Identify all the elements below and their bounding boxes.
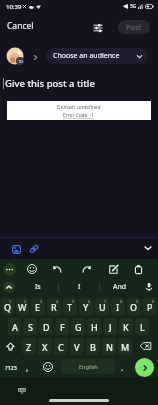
staticText: B	[90, 341, 96, 353]
button[interactable]: Is	[18, 278, 58, 296]
button[interactable]: Profile	[6, 47, 24, 65]
staticText: O	[130, 301, 138, 313]
button[interactable]: Voice input	[140, 278, 158, 296]
button[interactable]: Comma	[20, 357, 35, 377]
staticText: 8	[120, 299, 123, 304]
button[interactable]: Post	[118, 20, 150, 34]
staticText: Z	[26, 341, 32, 353]
staticText: W	[18, 301, 27, 313]
button[interactable]: Undo	[48, 260, 65, 277]
staticText: Y	[83, 301, 89, 313]
staticText: S	[28, 321, 33, 333]
button[interactable]: Z	[22, 338, 36, 355]
button[interactable]: T	[63, 298, 77, 315]
staticText: J	[109, 321, 112, 333]
button[interactable]: N	[102, 338, 116, 355]
staticText: 1	[9, 299, 12, 304]
staticText: I	[78, 282, 81, 292]
staticText: A	[12, 321, 18, 333]
staticText: U	[99, 301, 106, 313]
staticText: Domain: undefined	[57, 104, 101, 111]
button[interactable]: V	[70, 338, 84, 355]
button[interactable]: Cancel	[3, 17, 38, 35]
button[interactable]: ?123	[2, 357, 20, 377]
button[interactable]: Clipboard	[130, 261, 146, 277]
staticText: X	[42, 341, 48, 353]
button[interactable]: S	[23, 318, 37, 335]
button[interactable]: Post options	[89, 19, 106, 36]
button[interactable]: Hide keyboard	[16, 385, 28, 397]
staticText: And	[113, 282, 127, 292]
button[interactable]: M	[118, 338, 132, 355]
button[interactable]: C	[54, 338, 68, 355]
button[interactable]: O	[127, 298, 141, 315]
button[interactable]: W	[16, 298, 29, 315]
staticText: F	[60, 321, 65, 333]
staticText: G	[75, 321, 82, 333]
button[interactable]: Y	[79, 298, 93, 315]
button[interactable]: L	[135, 318, 149, 335]
button[interactable]: I	[111, 298, 125, 315]
staticText: ,	[26, 362, 29, 373]
button[interactable]: X	[38, 338, 52, 355]
button[interactable]: H	[87, 318, 101, 335]
button[interactable]: A	[8, 318, 21, 335]
button[interactable]: D	[39, 318, 53, 335]
button[interactable]: Expand suggestions	[0, 278, 18, 296]
button[interactable]: U	[95, 298, 109, 315]
button[interactable]: E	[31, 298, 45, 315]
button[interactable]: R	[47, 298, 61, 315]
button[interactable]: Add link	[26, 241, 42, 257]
staticText: 5	[72, 299, 75, 304]
button[interactable]: Give this post a title	[3, 77, 95, 90]
button[interactable]: Emoji	[40, 357, 56, 377]
button[interactable]: And	[100, 278, 140, 296]
button[interactable]: J	[103, 318, 117, 335]
button[interactable]: Choose an audience	[46, 48, 148, 64]
button[interactable]: Q	[1, 298, 14, 315]
staticText: V	[74, 341, 80, 353]
button[interactable]: Text editing	[105, 261, 121, 277]
staticText: D	[43, 321, 50, 333]
staticText: Error Code: -1	[63, 112, 95, 119]
button[interactable]: English	[61, 359, 115, 374]
button[interactable]: F	[55, 318, 69, 335]
button[interactable]: P	[143, 298, 157, 315]
staticText: 5G	[130, 3, 137, 10]
button[interactable]: G	[71, 318, 85, 335]
staticText: 10	[18, 59, 23, 64]
button[interactable]: Enter	[134, 357, 154, 377]
button[interactable]: Shift	[0, 336, 21, 356]
staticText: T	[67, 301, 73, 313]
button[interactable]: Period	[115, 357, 129, 377]
staticText: 3	[40, 299, 43, 304]
staticText: English	[79, 363, 98, 370]
staticText: 4	[56, 299, 59, 304]
button[interactable]: K	[119, 318, 133, 335]
staticText: Post	[126, 22, 142, 32]
button[interactable]: Redo	[78, 260, 95, 277]
button[interactable]: Backspace	[133, 336, 158, 356]
staticText: E	[35, 301, 41, 313]
staticText: 9	[136, 299, 139, 304]
staticText: N	[106, 341, 113, 353]
staticText: 7	[104, 299, 107, 304]
button[interactable]: More options	[1, 261, 17, 277]
staticText: H	[91, 321, 98, 333]
staticText: 2	[24, 299, 27, 304]
staticText: 0	[152, 299, 155, 304]
staticText: Is	[35, 282, 41, 292]
staticText: L	[140, 321, 145, 333]
button[interactable]: I	[59, 278, 99, 296]
staticText: .	[121, 362, 124, 373]
button[interactable]: B	[86, 338, 100, 355]
staticText: 10:39	[6, 3, 22, 11]
staticText: C	[58, 341, 64, 353]
button[interactable]: Stickers	[24, 261, 40, 277]
staticText: Choose an audience	[53, 51, 120, 61]
staticText: Cancel	[7, 20, 34, 32]
button[interactable]: Collapse toolbar	[140, 240, 156, 256]
staticText: Give this post a title	[5, 77, 95, 90]
staticText: Q	[4, 301, 12, 313]
button[interactable]: Add image	[8, 241, 24, 257]
